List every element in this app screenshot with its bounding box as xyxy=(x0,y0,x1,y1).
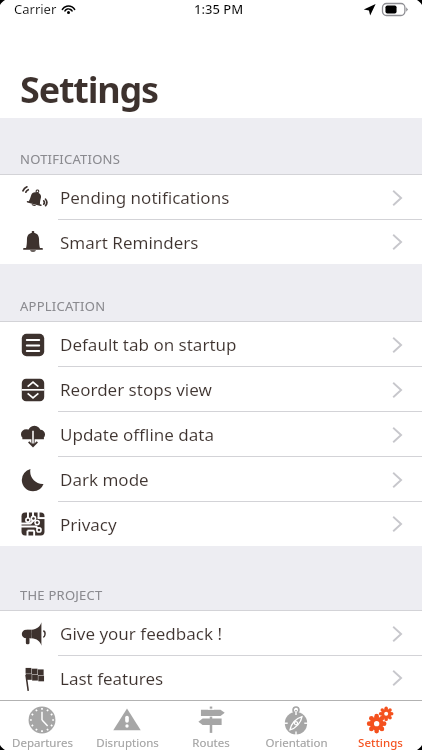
staticText: Give your feedback ! xyxy=(60,622,223,645)
staticText: Pending notifications xyxy=(60,186,230,209)
button[interactable]: Dark mode xyxy=(0,457,422,502)
staticText: THE PROJECT xyxy=(20,586,103,604)
button[interactable]: Default tab on startup xyxy=(0,322,422,367)
button[interactable]: Privacy xyxy=(0,502,422,546)
staticText: Dark mode xyxy=(60,468,149,491)
staticText: Privacy xyxy=(60,513,117,536)
button[interactable]: Departures xyxy=(0,701,84,750)
button[interactable]: Smart Reminders xyxy=(0,220,422,264)
staticText: Default tab on startup xyxy=(60,333,237,356)
staticText: Orientation xyxy=(265,735,328,750)
staticText: Carrier xyxy=(14,0,57,18)
button[interactable]: Disruptions xyxy=(85,701,169,750)
button[interactable]: Update offline data xyxy=(0,412,422,457)
staticText: Disruptions xyxy=(96,735,159,750)
button[interactable]: Pending notifications xyxy=(0,175,422,220)
button[interactable]: Routes xyxy=(169,701,253,750)
staticText: Settings xyxy=(20,65,158,114)
button[interactable]: Settings xyxy=(338,701,422,750)
button[interactable]: Orientation xyxy=(254,701,338,750)
staticText: Last features xyxy=(60,667,164,690)
staticText: Departures xyxy=(12,735,73,750)
staticText: NOTIFICATIONS xyxy=(20,150,121,168)
staticText: Smart Reminders xyxy=(60,231,199,254)
staticText: Routes xyxy=(192,735,230,750)
staticText: Settings xyxy=(358,735,403,750)
button[interactable]: Give your feedback ! xyxy=(0,611,422,656)
staticText: APPLICATION xyxy=(20,297,106,315)
staticText: Update offline data xyxy=(60,423,214,446)
button[interactable]: Last features xyxy=(0,656,422,700)
staticText: Reorder stops view xyxy=(60,378,212,401)
button[interactable]: Reorder stops view xyxy=(0,367,422,412)
staticText: 1:35 PM xyxy=(194,0,244,18)
